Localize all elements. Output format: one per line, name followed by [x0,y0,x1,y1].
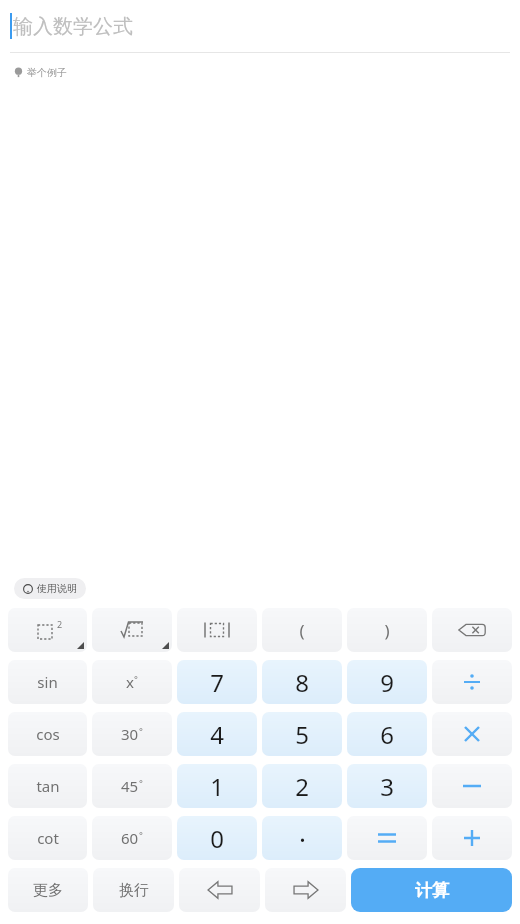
staticText: 6 [380,718,394,751]
button[interactable]: Plus [432,816,512,860]
button[interactable]: 1 [177,764,257,808]
staticText: sin [37,672,58,692]
button[interactable]: 举个例子 [13,66,67,79]
button[interactable]: Square root [92,608,172,652]
button[interactable]: Square [8,608,87,652]
button[interactable]: x [92,660,172,704]
button[interactable]: ) [347,608,427,652]
staticText: cos [36,724,60,744]
button[interactable]: 6 [347,712,427,756]
staticText: ( [299,619,305,642]
staticText: 举个例子 [27,66,67,79]
button[interactable]: 5 [262,712,342,756]
button[interactable]: 2 [262,764,342,808]
button[interactable]: 换行 [93,868,174,912]
button[interactable]: Equals [347,816,427,860]
button[interactable]: 使用说明 [14,578,86,599]
button[interactable]: 30 [92,712,172,756]
staticText: 60 [121,828,139,848]
staticText: ) [384,619,390,642]
staticText: 45 [121,776,139,796]
button[interactable]: Backspace [432,608,512,652]
staticText: 4 [210,718,224,751]
staticText: 5 [295,718,309,751]
button[interactable]: cos [8,712,87,756]
staticText: ° [139,777,143,789]
button[interactable]: 3 [347,764,427,808]
staticText: ° [139,829,143,841]
button[interactable]: 45 [92,764,172,808]
staticText: 0 [210,822,224,855]
button[interactable]: 计算 [351,868,512,912]
staticText: 计算 [415,880,449,901]
staticText: 输入数学公式 [13,14,133,39]
button[interactable]: Minus [432,764,512,808]
staticText: 1 [210,770,224,803]
button[interactable]: 7 [177,660,257,704]
staticText: 9 [380,666,394,699]
staticText: 更多 [33,881,63,900]
staticText: 换行 [119,881,149,900]
button[interactable]: 输入数学公式 [0,0,520,52]
staticText: 2 [57,618,63,630]
staticText: ° [139,725,143,737]
staticText: ° [134,673,138,685]
staticText: 2 [295,770,309,803]
button[interactable]: Divide [432,660,512,704]
button[interactable]: Absolute value [177,608,257,652]
button[interactable]: 8 [262,660,342,704]
staticText: 7 [210,666,224,699]
staticText: 使用说明 [37,582,77,595]
button[interactable]: 更多 [8,868,88,912]
button[interactable]: sin [8,660,87,704]
button[interactable]: 0 [177,816,257,860]
staticText: 30 [121,724,139,744]
button[interactable]: 9 [347,660,427,704]
button[interactable]: Move cursor left [179,868,260,912]
button[interactable]: Move cursor right [265,868,346,912]
staticText: cot [37,828,59,848]
staticText: 3 [380,770,394,803]
button[interactable]: 60 [92,816,172,860]
button[interactable]: 4 [177,712,257,756]
button[interactable]: · [262,816,342,860]
button[interactable]: ( [262,608,342,652]
staticText: 8 [295,666,309,699]
staticText: tan [36,776,60,796]
staticText: · [299,821,306,856]
staticText: x [126,672,134,692]
button[interactable]: Multiply [432,712,512,756]
button[interactable]: cot [8,816,87,860]
button[interactable]: tan [8,764,87,808]
